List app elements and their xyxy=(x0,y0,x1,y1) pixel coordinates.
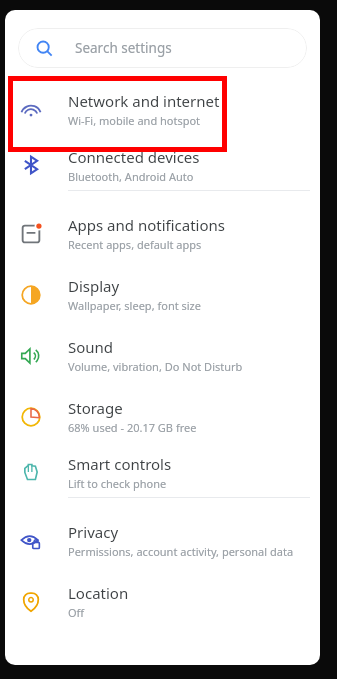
button[interactable]: Connected devices xyxy=(5,140,320,190)
button[interactable]: Storage xyxy=(5,386,320,447)
button[interactable]: Apps and notifications xyxy=(5,203,320,264)
other: Storage xyxy=(20,406,42,428)
staticText: Wallpaper, sleep, font size xyxy=(68,298,201,313)
other: Location xyxy=(20,591,42,613)
staticText: Recent apps, default apps xyxy=(68,237,202,252)
staticText: Smart controls xyxy=(68,454,172,474)
staticText: Bluetooth, Android Auto xyxy=(68,169,194,184)
staticText: Network and internet xyxy=(68,91,220,111)
staticText: Connected devices xyxy=(68,147,200,167)
staticText: 68% used - 20.17 GB free xyxy=(68,420,197,435)
button[interactable]: Privacy xyxy=(5,510,320,571)
button[interactable]: Location xyxy=(5,571,320,632)
staticText: Privacy xyxy=(68,522,119,542)
staticText: Wi-Fi, mobile and hotspot xyxy=(68,113,201,128)
button[interactable]: Network and internet xyxy=(5,79,320,140)
staticText: Sound xyxy=(68,337,114,357)
other: Display xyxy=(20,284,42,306)
staticText: Location xyxy=(68,583,129,603)
staticText: Search settings xyxy=(75,39,172,57)
staticText: Display xyxy=(68,276,120,296)
other: Apps and notifications xyxy=(20,223,42,245)
staticText: Volume, vibration, Do Not Disturb xyxy=(68,359,243,374)
other: Smart controls xyxy=(20,461,42,483)
button[interactable]: Display xyxy=(5,264,320,325)
button[interactable]: Search settings xyxy=(18,28,307,68)
button[interactable]: Sound xyxy=(5,325,320,386)
other: Network and internet xyxy=(20,99,42,121)
staticText: Lift to check phone xyxy=(68,476,167,491)
staticText: Apps and notifications xyxy=(68,215,226,235)
staticText: Storage xyxy=(68,398,123,418)
staticText: Permissions, account activity, personal … xyxy=(68,544,294,559)
other: Connected devices xyxy=(20,154,42,176)
other: Privacy xyxy=(20,530,42,552)
button[interactable]: Smart controls xyxy=(5,447,320,497)
other: Sound xyxy=(20,345,42,367)
staticText: Off xyxy=(68,605,85,620)
